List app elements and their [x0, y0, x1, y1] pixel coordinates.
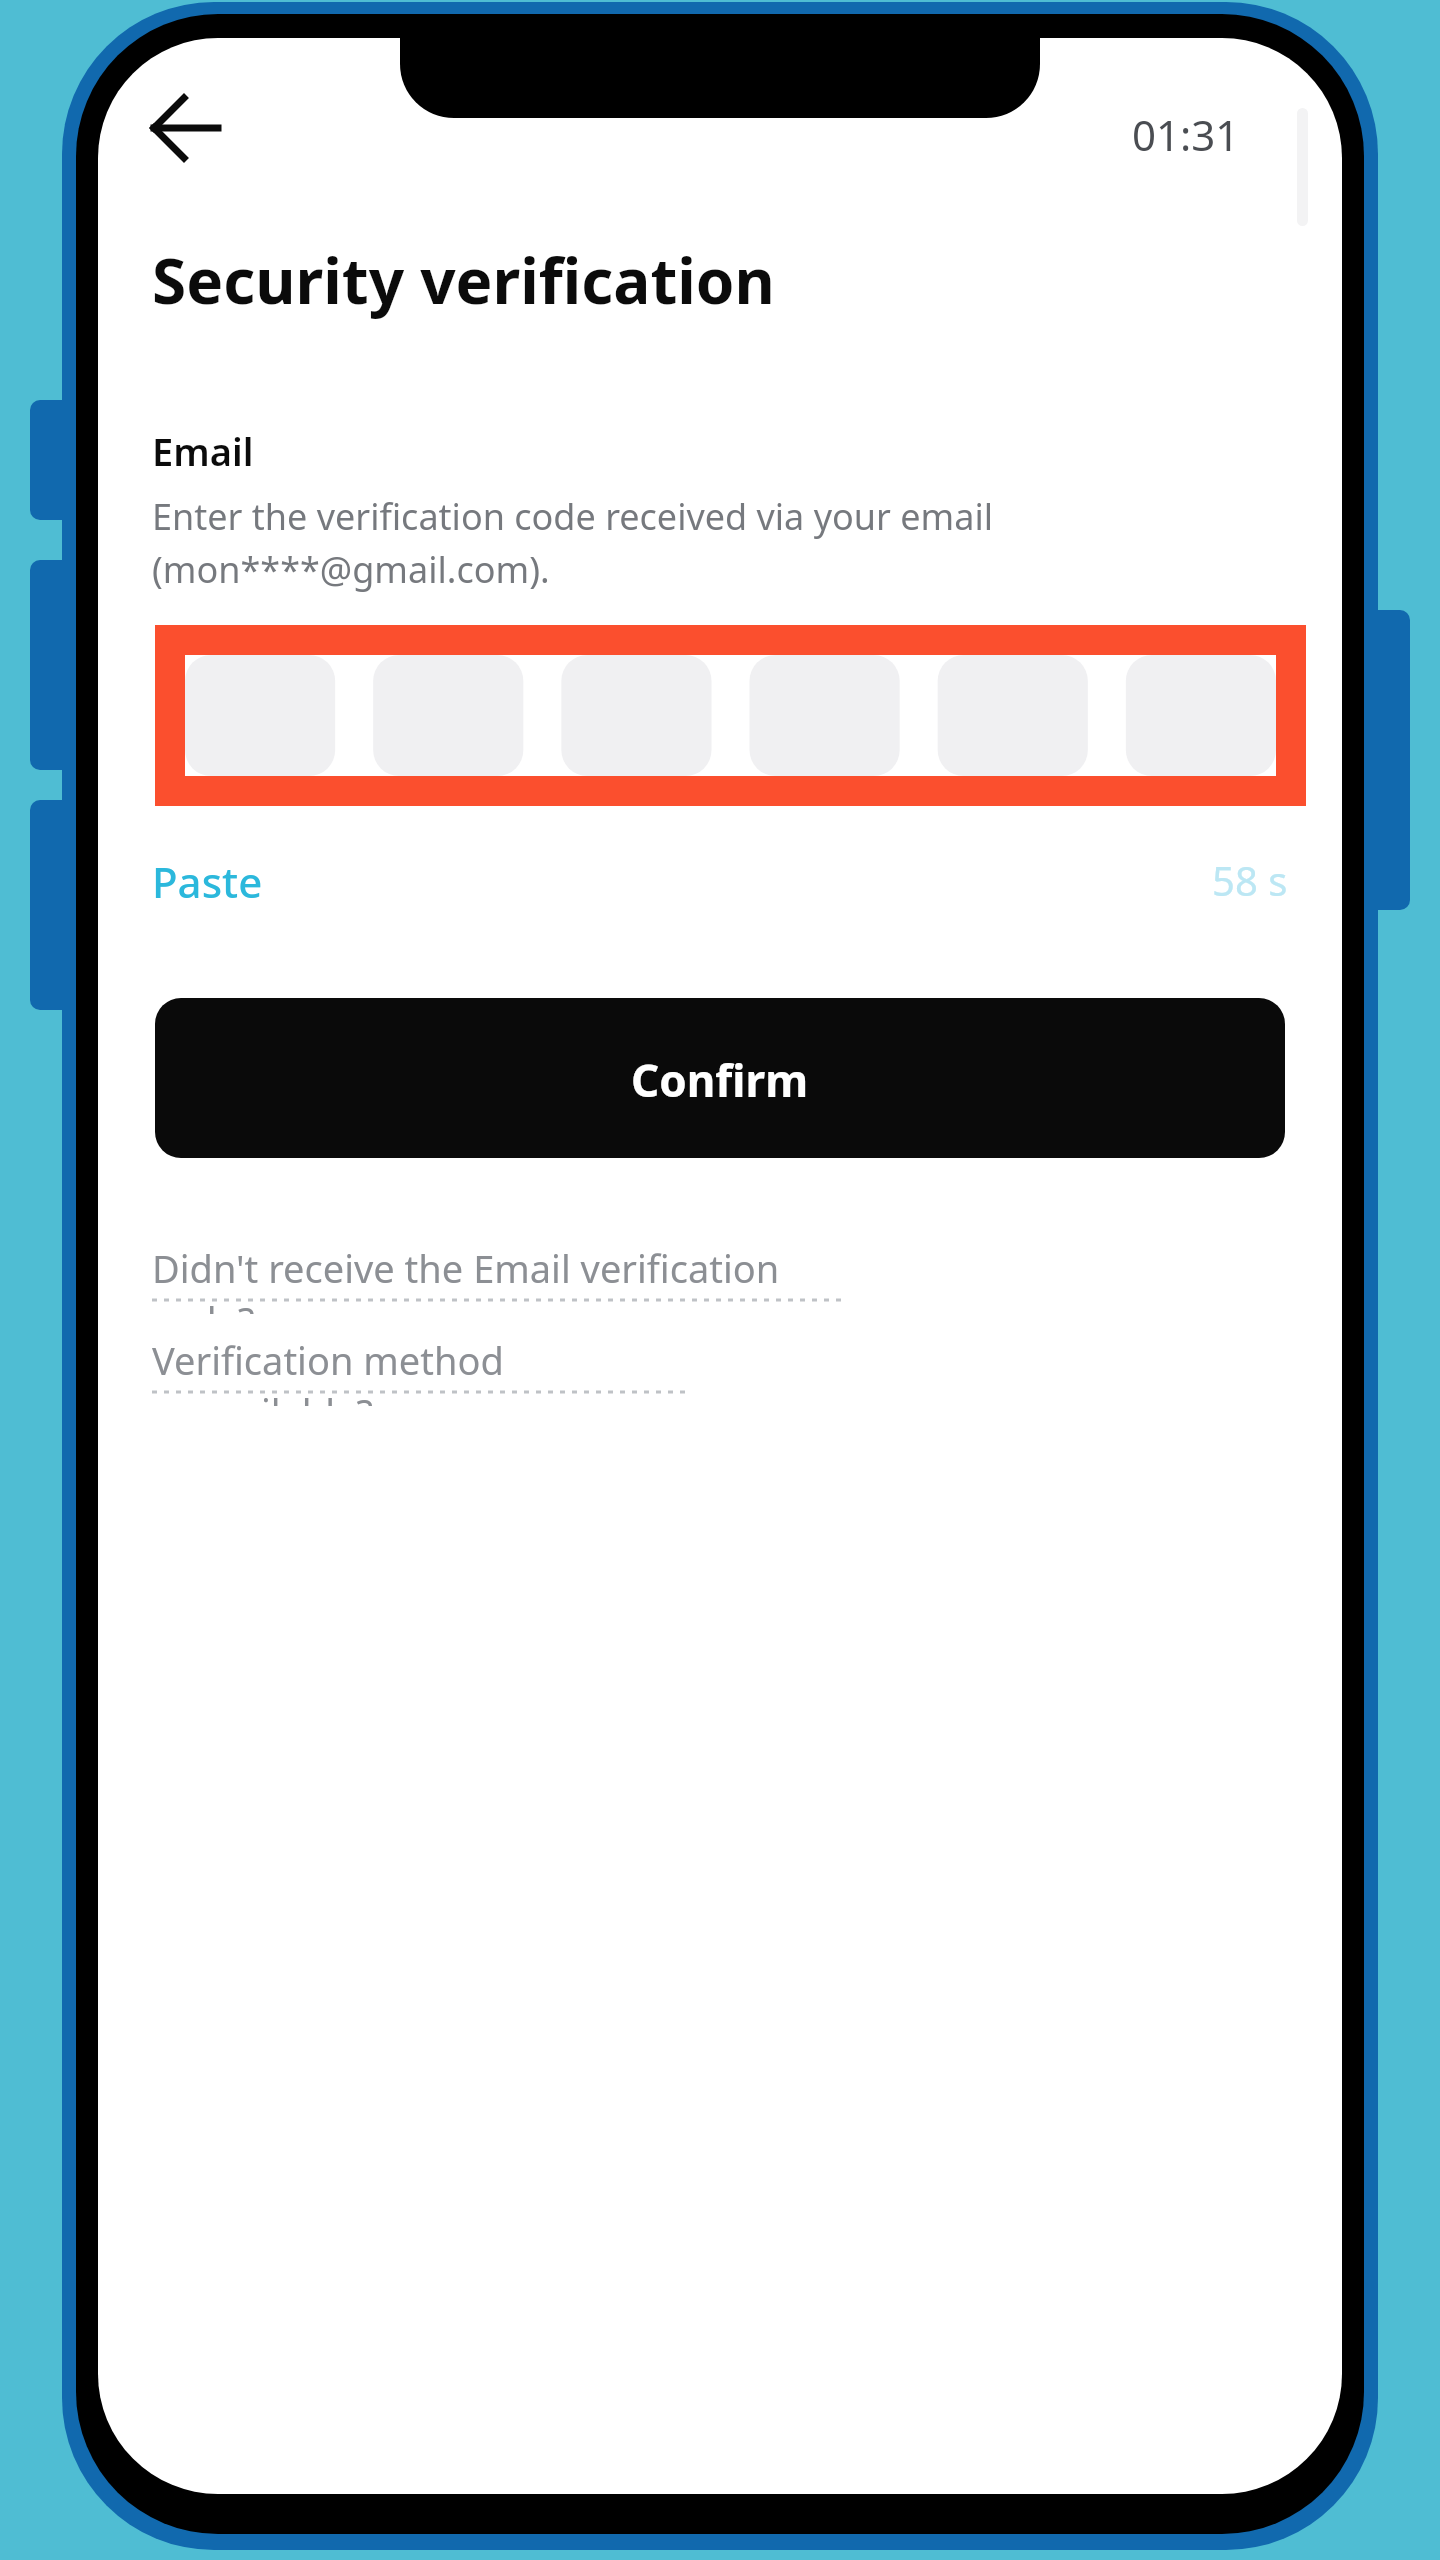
staticText: Paste — [152, 853, 263, 910]
staticText: 01:31 — [1132, 106, 1240, 163]
button[interactable]: Confirm — [155, 998, 1285, 1158]
staticText: Verification method unavailable? — [152, 1334, 686, 1406]
staticText: Security verification — [152, 238, 775, 322]
button[interactable]: Didn't receive the Email verification co… — [152, 1238, 842, 1310]
staticText: Confirm — [631, 1050, 809, 1110]
staticText: Didn't receive the Email verification co… — [152, 1242, 842, 1314]
button[interactable]: Back — [140, 82, 232, 174]
button[interactable]: Verification method unavailable? — [152, 1330, 686, 1402]
staticText: 58 s — [1212, 853, 1288, 907]
staticText: Email — [152, 425, 254, 477]
button[interactable]: Verification code input — [155, 625, 1306, 806]
button[interactable]: Paste — [148, 845, 278, 915]
staticText: Enter the verification code received via… — [152, 492, 994, 593]
